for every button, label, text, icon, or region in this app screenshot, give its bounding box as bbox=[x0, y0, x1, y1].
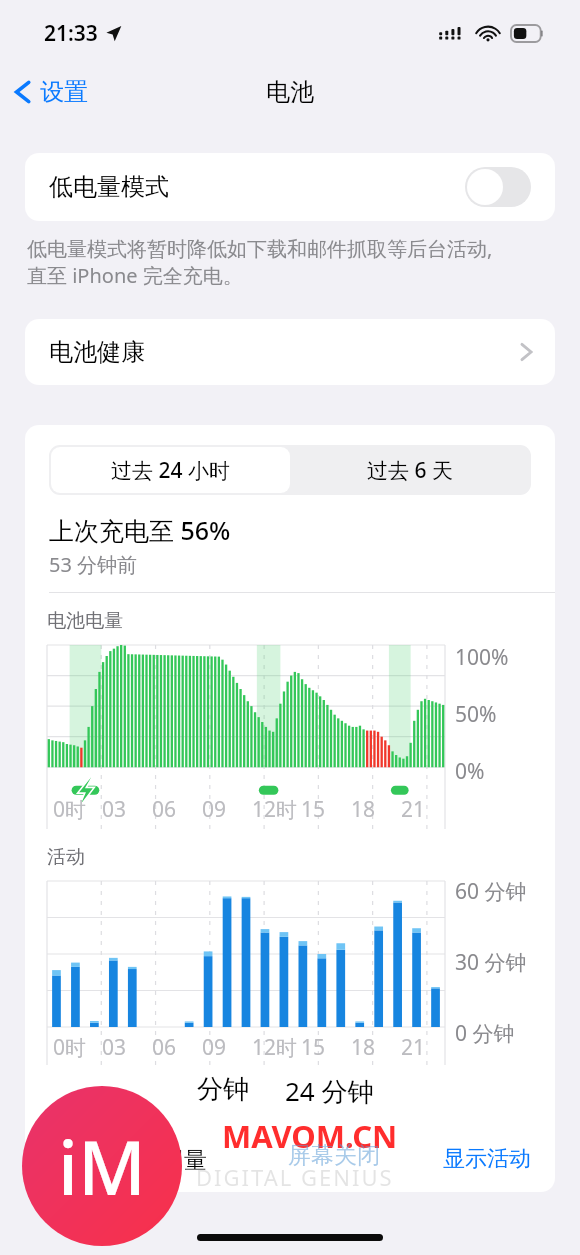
staticText: App的电池用量 bbox=[49, 1143, 207, 1174]
staticText: 21:33 bbox=[44, 19, 98, 48]
staticText: 30 分钟 bbox=[455, 948, 527, 977]
staticText: 03 bbox=[102, 795, 127, 824]
staticText: 18 bbox=[351, 1033, 376, 1062]
button[interactable]: 过去 6 天 bbox=[290, 447, 529, 493]
staticText: 21 bbox=[401, 795, 426, 824]
staticText: 过去 24 小时 bbox=[111, 456, 230, 485]
staticText: 18 bbox=[351, 795, 376, 824]
staticText: 上次充电至 56% bbox=[49, 513, 231, 547]
staticText: 0时 bbox=[53, 1033, 87, 1062]
staticText: 09 bbox=[202, 795, 227, 824]
staticText: 屏幕关闭 bbox=[288, 1141, 380, 1170]
staticText: 直至 iPhone 完全充电。 bbox=[27, 262, 243, 289]
staticText: 50% bbox=[455, 700, 497, 729]
staticText: 分钟 bbox=[197, 1073, 249, 1106]
staticText: 06 bbox=[152, 1033, 177, 1062]
staticText: 100% bbox=[455, 643, 509, 672]
staticText: DIGITAL GENIUS bbox=[196, 1162, 394, 1192]
button[interactable]: 低电量模式 bbox=[25, 153, 555, 221]
staticText: 0 分钟 bbox=[455, 1019, 515, 1048]
staticText: 电池电量 bbox=[47, 609, 123, 633]
button[interactable]: 设置 bbox=[0, 71, 98, 113]
staticText: 53 分钟前 bbox=[49, 551, 138, 578]
staticText: 15 bbox=[301, 1033, 326, 1062]
staticText: 显示活动 bbox=[443, 1145, 531, 1173]
staticText: 60 分钟 bbox=[455, 877, 527, 906]
staticText: 电池 bbox=[266, 77, 314, 107]
staticText: 0时 bbox=[53, 795, 87, 824]
staticText: 24 分钟 bbox=[285, 1073, 374, 1109]
staticText: 电池健康 bbox=[49, 337, 520, 367]
staticText: 03 bbox=[102, 1033, 127, 1062]
staticText: iM bbox=[58, 1116, 146, 1217]
staticText: 过去 6 天 bbox=[367, 456, 453, 485]
button[interactable]: 低电量模式开关 bbox=[465, 167, 531, 207]
button[interactable]: 过去 24 小时 bbox=[51, 447, 290, 493]
staticText: 06 bbox=[152, 795, 177, 824]
staticText: 低电量模式 bbox=[49, 172, 465, 202]
button[interactable]: 显示活动 bbox=[443, 1145, 531, 1173]
staticText: 低电量模式将暂时降低如下载和邮件抓取等后台活动, bbox=[27, 235, 493, 262]
staticText: 0% bbox=[455, 757, 485, 786]
staticText: 12时 bbox=[252, 1033, 298, 1062]
staticText: 09 bbox=[202, 1033, 227, 1062]
button[interactable]: 电池健康 bbox=[25, 319, 555, 385]
staticText: 15 bbox=[301, 795, 326, 824]
staticText: 活动 bbox=[47, 845, 85, 869]
staticText: 设置 bbox=[40, 77, 88, 107]
staticText: 21 bbox=[401, 1033, 426, 1062]
staticText: 12时 bbox=[252, 795, 298, 824]
staticText: MAVOM.CN bbox=[222, 1115, 398, 1157]
